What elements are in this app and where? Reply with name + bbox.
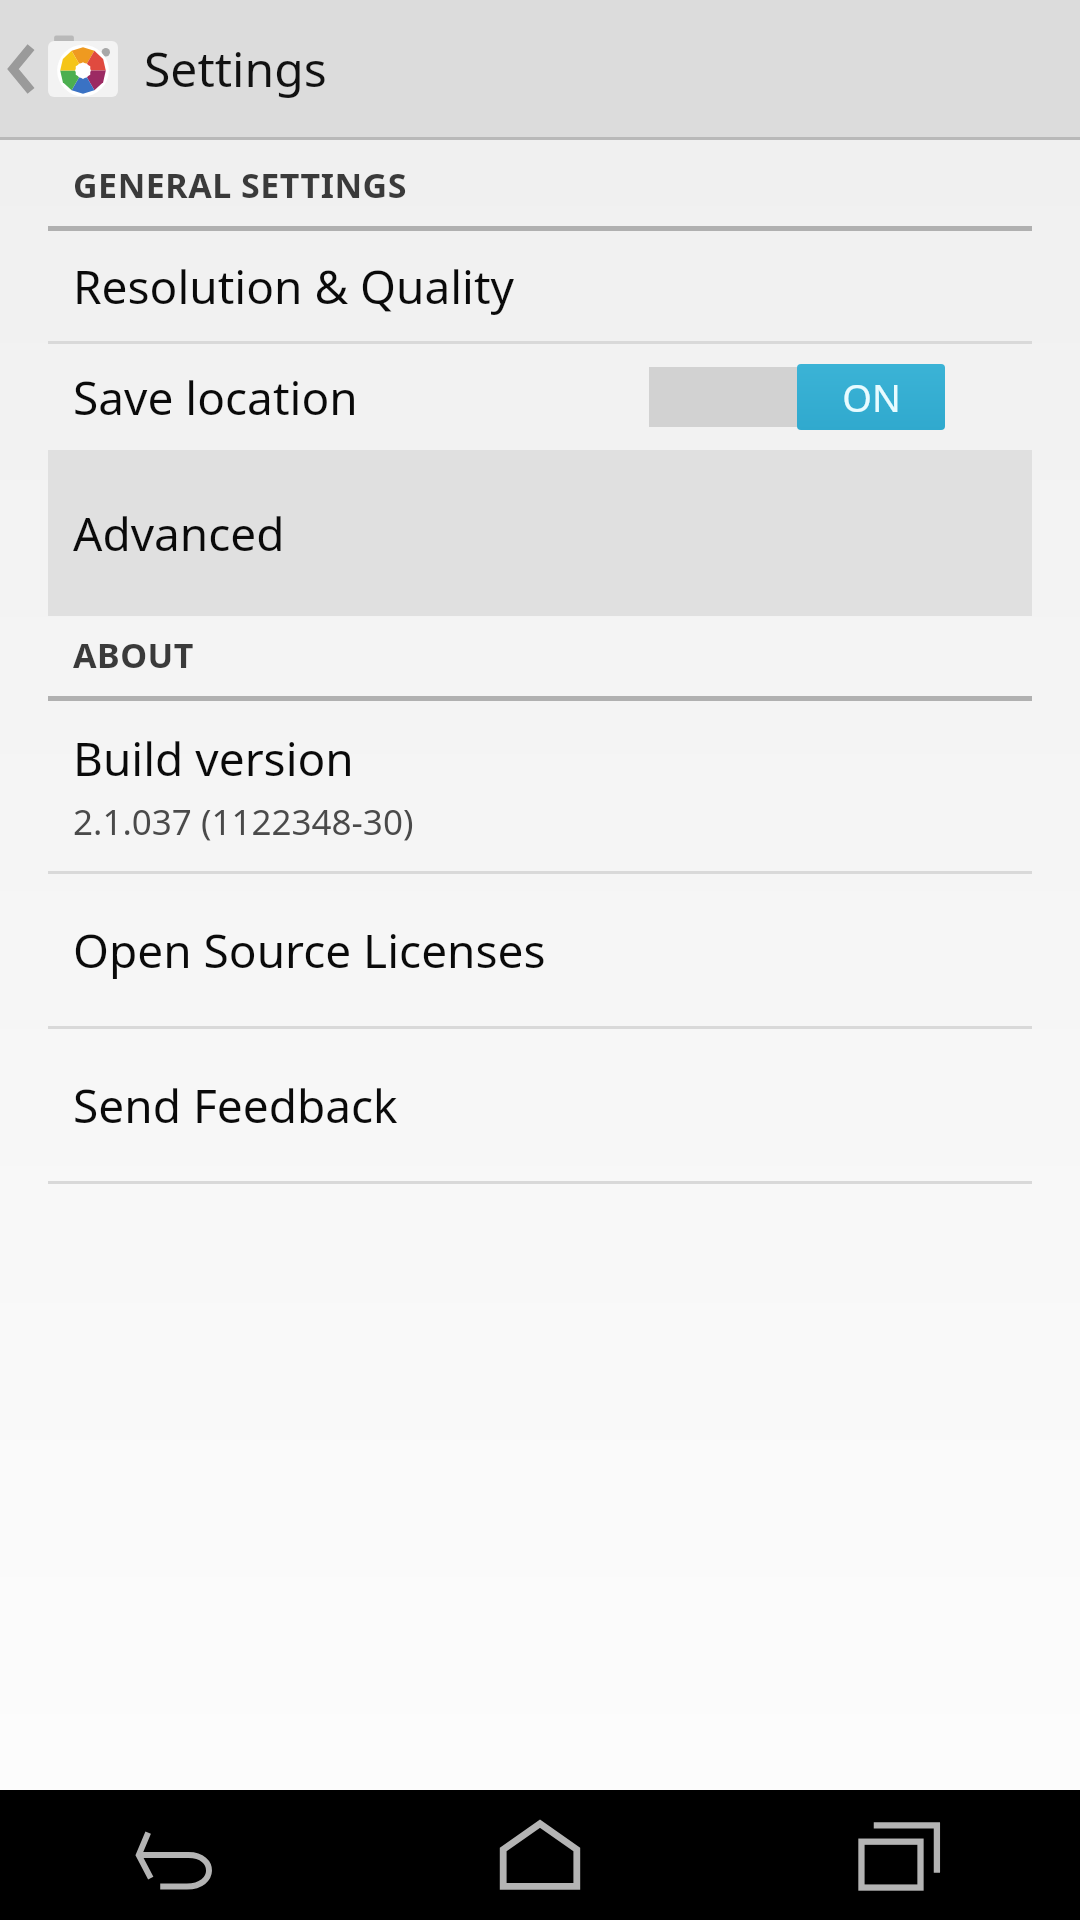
- staticText: ABOUT: [73, 632, 194, 678]
- staticText: Build version: [73, 727, 354, 790]
- button[interactable]: Save location: [0, 344, 1080, 450]
- button[interactable]: Build version: [0, 701, 1080, 871]
- button[interactable]: Recents: [720, 1790, 1080, 1920]
- button[interactable]: Back: [0, 1790, 360, 1920]
- button[interactable]: Navigate up: [0, 0, 128, 137]
- staticText: Open Source Licenses: [73, 919, 546, 982]
- staticText: Save location: [73, 366, 358, 429]
- other: Save location on: [649, 364, 945, 430]
- staticText: Advanced: [73, 502, 285, 565]
- button[interactable]: Open Source Licenses: [0, 874, 1080, 1026]
- staticText: 2.1.037 (1122348-30): [73, 798, 414, 846]
- staticText: Send Feedback: [73, 1074, 398, 1137]
- staticText: Resolution & Quality: [73, 255, 515, 318]
- staticText: Settings: [144, 36, 327, 101]
- button[interactable]: Home: [360, 1790, 720, 1920]
- button[interactable]: Send Feedback: [0, 1029, 1080, 1181]
- staticText: GENERAL SETTINGS: [73, 162, 407, 208]
- button[interactable]: Advanced: [48, 450, 1032, 616]
- button[interactable]: Resolution & Quality: [0, 231, 1080, 341]
- staticText: ON: [842, 371, 901, 423]
